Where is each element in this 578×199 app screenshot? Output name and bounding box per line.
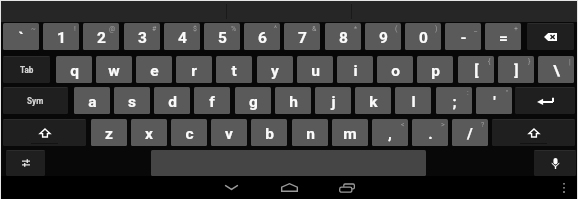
staticText: 4 <box>178 29 187 47</box>
button[interactable]: Keyboard settings <box>6 150 45 176</box>
button[interactable]: [ <box>458 56 494 83</box>
button[interactable]: 1 <box>43 23 79 50</box>
button[interactable]: ] <box>498 56 534 83</box>
staticText: f <box>209 93 215 111</box>
button[interactable]: q <box>56 56 92 83</box>
staticText: ? <box>481 121 485 129</box>
button[interactable]: 0 <box>405 23 441 50</box>
button[interactable]: z <box>91 119 127 146</box>
button[interactable]: \ <box>538 56 574 83</box>
staticText: @ <box>109 25 116 33</box>
staticText: g <box>249 93 258 111</box>
staticText: n <box>306 125 315 143</box>
button[interactable]: c <box>171 119 207 146</box>
button[interactable]: - <box>445 23 481 50</box>
button[interactable]: i <box>337 56 373 83</box>
staticText: c <box>185 125 194 143</box>
button[interactable]: Tab <box>3 56 50 83</box>
button[interactable]: v <box>211 119 247 146</box>
button[interactable]: Voice input <box>534 150 576 176</box>
staticText: 2 <box>97 29 106 47</box>
button[interactable]: Recent apps <box>323 176 371 199</box>
button[interactable]: a <box>74 87 110 114</box>
button[interactable]: . <box>412 119 448 146</box>
button[interactable]: e <box>136 56 172 83</box>
button[interactable]: ' <box>476 87 512 114</box>
staticText: p <box>431 62 440 80</box>
button[interactable]: s <box>114 87 150 114</box>
button[interactable]: Shift <box>492 119 575 146</box>
button[interactable]: ; <box>436 87 472 114</box>
button[interactable]: f <box>194 87 230 114</box>
button[interactable]: Home <box>265 176 313 199</box>
staticText: \ <box>553 62 560 80</box>
staticText: $ <box>193 25 197 33</box>
button[interactable]: Sym <box>3 87 68 114</box>
button[interactable]: g <box>235 87 271 114</box>
staticText: , <box>388 125 392 143</box>
button[interactable]: j <box>315 87 351 114</box>
button[interactable]: / <box>452 119 488 146</box>
button[interactable]: x <box>131 119 167 146</box>
staticText: ~ <box>31 25 36 33</box>
staticText: / <box>467 125 473 143</box>
staticText: > <box>441 121 445 129</box>
staticText: i <box>353 62 358 80</box>
staticText: _ <box>474 25 478 33</box>
staticText: ] <box>514 62 519 80</box>
staticText: + <box>514 25 518 33</box>
button[interactable]: u <box>297 56 333 83</box>
button[interactable]: 9 <box>365 23 401 50</box>
staticText: ` <box>18 29 24 47</box>
button[interactable]: w <box>96 56 132 83</box>
button[interactable]: 5 <box>204 23 240 50</box>
staticText: : <box>467 89 469 97</box>
button[interactable]: 7 <box>284 23 320 50</box>
button[interactable]: More options <box>552 176 576 199</box>
staticText: " <box>506 89 509 97</box>
staticText: e <box>150 62 159 80</box>
button[interactable]: p <box>417 56 453 83</box>
button[interactable]: 4 <box>164 23 200 50</box>
button[interactable]: h <box>275 87 311 114</box>
staticText: ! <box>74 25 76 33</box>
staticText: % <box>231 25 237 33</box>
staticText: u <box>311 62 320 80</box>
button[interactable]: d <box>154 87 190 114</box>
staticText: j <box>331 93 336 111</box>
button[interactable]: Enter <box>515 87 575 114</box>
button[interactable]: y <box>257 56 293 83</box>
staticText: ^ <box>274 25 277 33</box>
staticText: x <box>145 125 153 143</box>
staticText: # <box>152 25 157 33</box>
button[interactable]: , <box>372 119 408 146</box>
button[interactable]: Hide keyboard <box>207 176 255 199</box>
staticText: w <box>108 62 120 80</box>
staticText: * <box>354 25 358 33</box>
button[interactable]: b <box>251 119 287 146</box>
button[interactable]: 2 <box>83 23 119 50</box>
button[interactable]: 6 <box>244 23 280 50</box>
button[interactable]: 3 <box>124 23 160 50</box>
button[interactable]: l <box>395 87 431 114</box>
staticText: h <box>289 93 298 111</box>
button[interactable]: o <box>377 56 413 83</box>
staticText: 5 <box>218 29 227 47</box>
staticText: o <box>391 62 400 80</box>
staticText: t <box>231 62 237 80</box>
button[interactable]: n <box>292 119 328 146</box>
staticText: Sym <box>27 96 44 106</box>
button[interactable]: t <box>216 56 252 83</box>
button[interactable]: ` <box>3 23 39 50</box>
button[interactable]: m <box>332 119 368 146</box>
staticText: 0 <box>419 29 428 47</box>
button[interactable]: k <box>355 87 391 114</box>
button[interactable]: r <box>176 56 212 83</box>
button[interactable]: Shift <box>3 119 86 146</box>
button[interactable]: 8 <box>325 23 361 50</box>
staticText: ' <box>493 93 496 111</box>
button[interactable]: Backspace <box>527 23 574 50</box>
staticText: z <box>105 125 113 143</box>
button[interactable]: = <box>485 23 521 50</box>
